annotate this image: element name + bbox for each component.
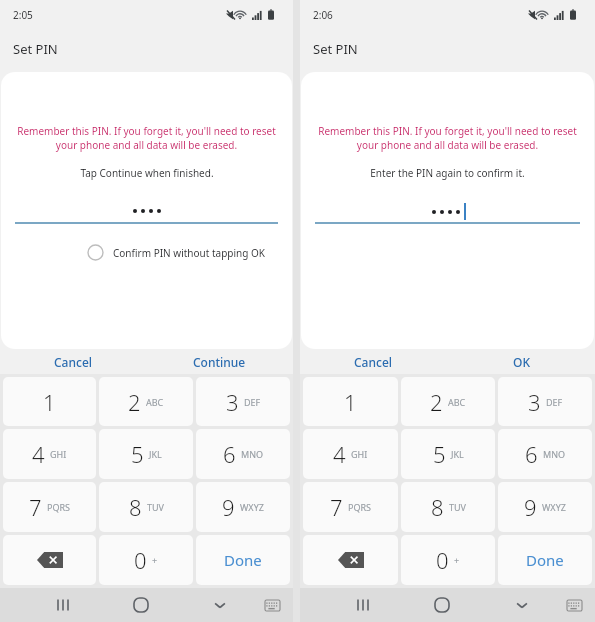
staticText: 2 xyxy=(128,387,141,417)
button[interactable]: Backspace xyxy=(3,535,96,585)
staticText: MNO xyxy=(241,448,264,460)
staticText: 8 xyxy=(431,492,444,522)
button[interactable]: Hide keyboard xyxy=(203,588,237,622)
button[interactable]: 9 xyxy=(498,482,592,532)
staticText: Continue xyxy=(193,354,246,370)
button[interactable]: Confirm PIN without tapping OK xyxy=(87,244,265,261)
staticText: 1 xyxy=(43,387,56,417)
staticText: 9 xyxy=(222,492,235,522)
button[interactable]: Cancel xyxy=(300,349,447,374)
button[interactable]: 2 xyxy=(401,377,495,426)
button[interactable]: Change keyboard xyxy=(257,590,287,620)
staticText: Remember this PIN. If you forget it, you… xyxy=(312,124,583,152)
button[interactable]: Recent apps xyxy=(46,588,80,622)
staticText: 1 xyxy=(344,387,357,417)
staticText: WXYZ xyxy=(542,501,566,513)
staticText: Cancel xyxy=(354,354,393,370)
staticText: Set PIN xyxy=(13,40,58,58)
button[interactable]: 2 xyxy=(99,377,193,426)
button[interactable]: 1 xyxy=(303,377,398,426)
button[interactable]: Hide keyboard xyxy=(505,588,539,622)
button[interactable]: Done xyxy=(196,535,290,585)
staticText: 0 xyxy=(134,545,147,575)
staticText: 7 xyxy=(330,492,343,522)
staticText: 6 xyxy=(223,439,236,469)
button[interactable]: Continue xyxy=(146,349,293,374)
button[interactable]: Cancel xyxy=(0,349,146,374)
button[interactable]: 8 xyxy=(99,482,193,532)
staticText: ABC xyxy=(448,396,466,408)
button[interactable]: 3 xyxy=(498,377,592,426)
button[interactable]: 5 xyxy=(401,429,495,479)
staticText: 4 xyxy=(32,439,45,469)
staticText: Cancel xyxy=(54,354,93,370)
staticText: + xyxy=(152,554,158,566)
staticText: 2:06 xyxy=(313,8,333,22)
staticText: 2:05 xyxy=(13,8,33,22)
button[interactable]: 5 xyxy=(99,429,193,479)
staticText: WXYZ xyxy=(240,501,264,513)
staticText: ABC xyxy=(146,396,164,408)
staticText: Tap Continue when finished. xyxy=(80,166,214,180)
staticText: OK xyxy=(513,354,530,370)
staticText: Set PIN xyxy=(313,40,358,58)
staticText: + xyxy=(454,554,460,566)
staticText: 5 xyxy=(131,439,144,469)
staticText: Enter the PIN again to confirm it. xyxy=(370,166,525,180)
button[interactable]: 1 xyxy=(3,377,96,426)
button[interactable]: 9 xyxy=(196,482,290,532)
button[interactable]: 6 xyxy=(196,429,290,479)
staticText: MNO xyxy=(543,448,566,460)
staticText: Confirm PIN without tapping OK xyxy=(113,246,265,260)
button[interactable]: 7 xyxy=(303,482,398,532)
staticText: DEF xyxy=(244,396,261,408)
staticText: DEF xyxy=(546,396,563,408)
staticText: 9 xyxy=(524,492,537,522)
staticText: GHI xyxy=(50,448,67,460)
staticText: TUV xyxy=(449,501,466,513)
staticText: JKL xyxy=(149,448,162,460)
staticText: PQRS xyxy=(47,501,71,513)
staticText: JKL xyxy=(451,448,464,460)
staticText: GHI xyxy=(351,448,368,460)
staticText: Done xyxy=(224,550,262,570)
button[interactable]: 0 xyxy=(99,535,193,585)
staticText: 0 xyxy=(436,545,449,575)
button[interactable]: Change keyboard xyxy=(559,590,589,620)
staticText: 5 xyxy=(433,439,446,469)
staticText: 8 xyxy=(129,492,142,522)
staticText: PQRS xyxy=(348,501,372,513)
button[interactable]: Home xyxy=(124,588,158,622)
staticText: 3 xyxy=(528,387,541,417)
button[interactable]: Home xyxy=(425,588,459,622)
button[interactable]: 8 xyxy=(401,482,495,532)
button[interactable]: 0 xyxy=(401,535,495,585)
staticText: 7 xyxy=(29,492,42,522)
staticText: 3 xyxy=(226,387,239,417)
button[interactable]: 4 xyxy=(3,429,96,479)
button[interactable]: 3 xyxy=(196,377,290,426)
button[interactable]: Done xyxy=(498,535,592,585)
staticText: 6 xyxy=(525,439,538,469)
button[interactable]: 6 xyxy=(498,429,592,479)
staticText: Done xyxy=(526,550,564,570)
button[interactable]: 7 xyxy=(3,482,96,532)
button[interactable]: Recent apps xyxy=(346,588,380,622)
staticText: TUV xyxy=(147,501,164,513)
button[interactable]: Backspace xyxy=(303,535,398,585)
button[interactable]: 4 xyxy=(303,429,398,479)
staticText: 2 xyxy=(430,387,443,417)
button[interactable]: OK xyxy=(447,349,595,374)
staticText: 4 xyxy=(333,439,346,469)
staticText: Remember this PIN. If you forget it, you… xyxy=(12,124,281,152)
